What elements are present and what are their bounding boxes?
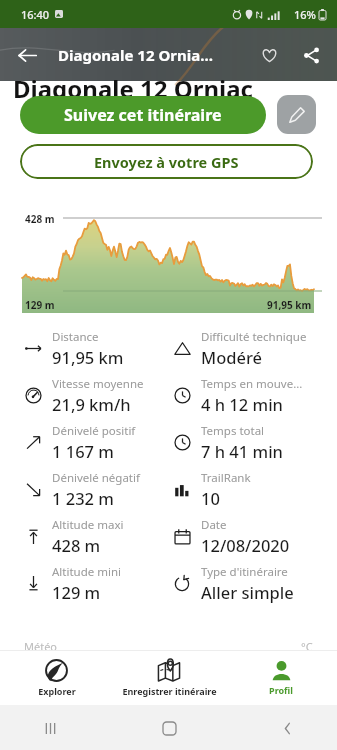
staticText: 428 m (52, 534, 101, 556)
staticText: 1 167 m (52, 440, 114, 462)
staticText: Diagonale 12 Ornia... (58, 45, 213, 65)
staticText: TrailRank (201, 470, 251, 486)
staticText: 16% (294, 7, 316, 22)
staticText: Vitesse moyenne (52, 376, 144, 392)
staticText: 12/08/2020 (201, 534, 290, 556)
button[interactable]: Enregistrer itinéraire (113, 650, 225, 705)
staticText: 129 m (25, 298, 55, 312)
staticText: 1 232 m (52, 487, 114, 509)
staticText: Date (201, 517, 227, 533)
button[interactable]: Profil (225, 650, 337, 705)
staticText: Envoyez à votre GPS (94, 152, 239, 172)
staticText: 16:40 (21, 7, 50, 22)
button[interactable]: Recents (30, 708, 70, 748)
button[interactable]: Home (149, 708, 189, 748)
staticText: °C (301, 639, 313, 654)
button[interactable]: Distance (24, 325, 168, 372)
button[interactable]: Back (267, 708, 307, 748)
staticText: Altitude maxi (52, 517, 124, 533)
staticText: Diagonale 12 Orniac (13, 72, 253, 105)
staticText: Météo (24, 639, 58, 654)
staticText: 129 m (52, 581, 101, 603)
staticText: Dénivelé positif (52, 423, 136, 439)
button[interactable]: Vitesse moyenne (24, 372, 168, 419)
button[interactable]: Altitude maxi (24, 513, 168, 560)
staticText: 428 m (25, 212, 55, 226)
button[interactable]: Envoyez à votre GPS (20, 144, 313, 179)
staticText: Altitude mini (52, 564, 122, 580)
staticText: 7 h 41 min (201, 440, 283, 462)
staticText: 4 h 12 min (201, 393, 283, 415)
staticText: Aller simple (201, 581, 294, 603)
button[interactable]: TrailRank (173, 466, 337, 513)
staticText: Temps en mouve... (201, 376, 303, 392)
staticText: Modéré (201, 346, 263, 368)
staticText: Enregistrer itinéraire (122, 685, 217, 697)
button[interactable]: Favorite (253, 39, 285, 71)
button[interactable]: Altitude mini (24, 560, 168, 607)
button[interactable]: Share (295, 39, 327, 71)
staticText: Type d'itinéraire (201, 564, 288, 580)
staticText: 91,95 km (267, 298, 312, 312)
staticText: Dénivelé négatif (52, 470, 140, 486)
button[interactable]: Dénivelé positif (24, 419, 168, 466)
staticText: Profil (269, 684, 293, 696)
button[interactable]: Explorer (0, 650, 113, 705)
button[interactable]: Back (10, 38, 44, 72)
button[interactable]: Edit (277, 95, 316, 134)
button[interactable]: Difficulté technique (173, 325, 337, 372)
staticText: Temps total (201, 423, 265, 439)
button[interactable]: Date (173, 513, 337, 560)
staticText: Explorer (38, 685, 76, 697)
button[interactable]: Temps en mouve... (173, 372, 337, 419)
button[interactable]: Temps total (173, 419, 337, 466)
staticText: Distance (52, 329, 99, 345)
button[interactable]: Suivez cet itinéraire (20, 96, 266, 134)
staticText: 91,95 km (52, 346, 124, 368)
staticText: Suivez cet itinéraire (64, 104, 222, 126)
staticText: 21,9 km/h (52, 393, 131, 415)
button[interactable]: Type d'itinéraire (173, 560, 337, 607)
staticText: 10 (201, 487, 220, 509)
button[interactable]: Dénivelé négatif (24, 466, 168, 513)
staticText: Difficulté technique (201, 329, 307, 345)
